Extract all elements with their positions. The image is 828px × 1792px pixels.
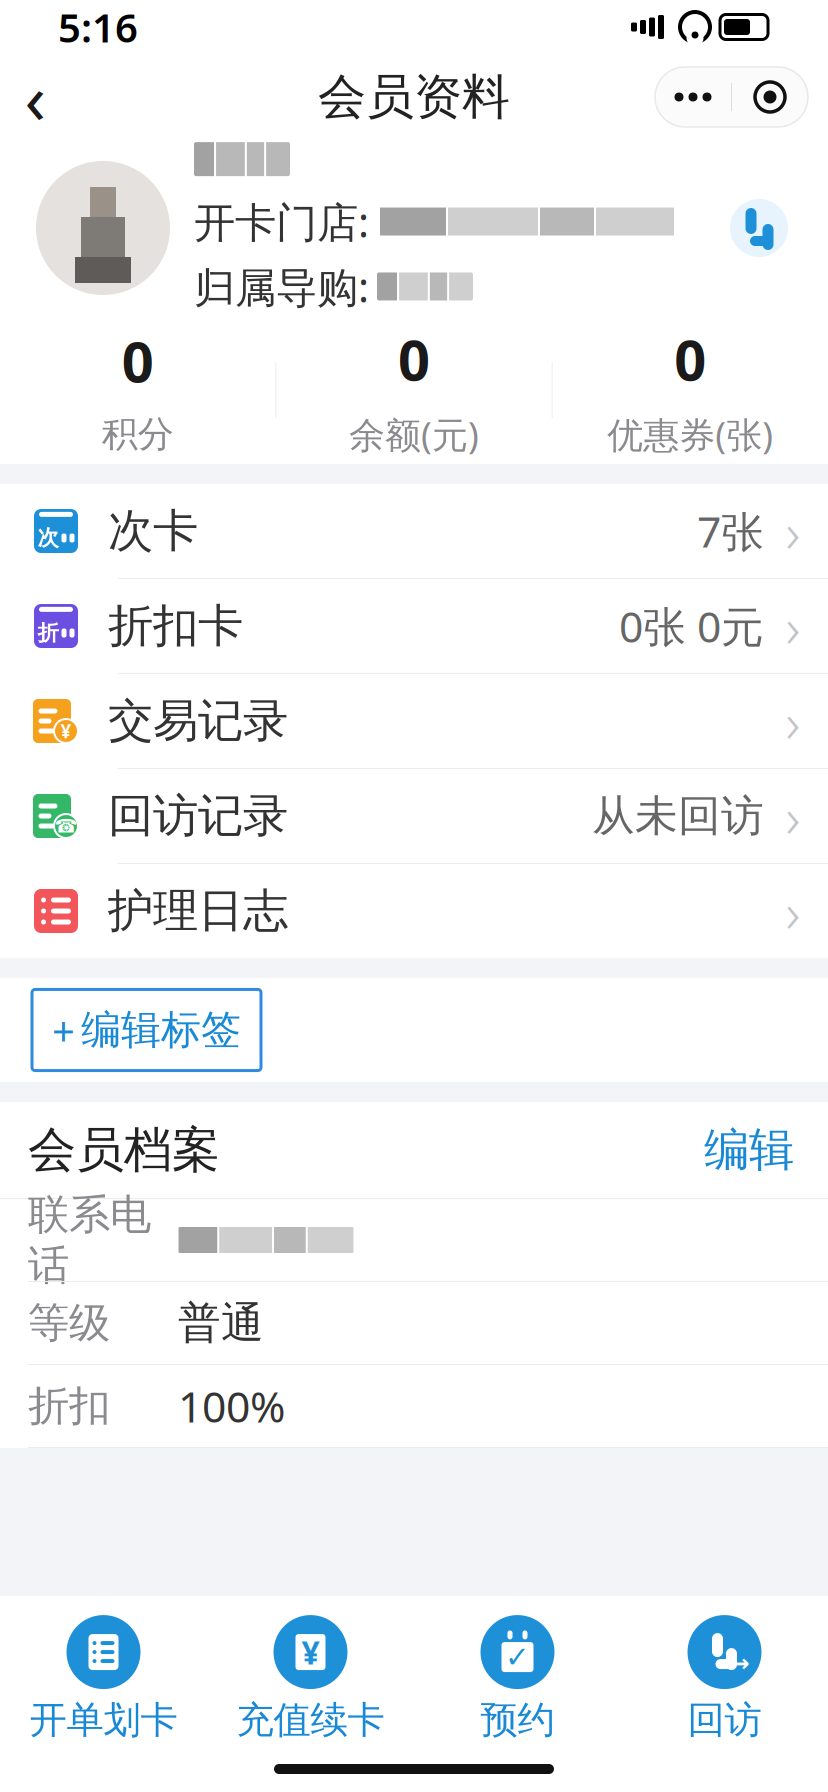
button[interactable]: 开单划卡 bbox=[0, 1615, 207, 1743]
button[interactable]: 折 bbox=[0, 579, 828, 673]
button[interactable]: 返回 bbox=[0, 59, 70, 135]
button[interactable]: 护理日志 bbox=[0, 864, 828, 958]
button[interactable]: 0 bbox=[553, 296, 828, 484]
staticText: 等级 bbox=[28, 1298, 110, 1348]
button[interactable]: ¥ bbox=[207, 1615, 414, 1743]
button[interactable]: ¥ bbox=[0, 674, 828, 768]
staticText: 开卡门店: bbox=[194, 194, 369, 249]
button[interactable]: 0 bbox=[276, 296, 552, 484]
staticText: 充值续卡 bbox=[236, 1697, 384, 1743]
button[interactable]: 0 bbox=[0, 298, 275, 482]
staticText: ‹ bbox=[24, 51, 45, 143]
staticText: → bbox=[729, 1649, 749, 1677]
staticText: 预约 bbox=[480, 1697, 554, 1743]
staticText: 护理日志 bbox=[108, 883, 288, 939]
button[interactable]: 拨打电话 bbox=[730, 199, 788, 257]
staticText: 优惠券(张) bbox=[607, 410, 773, 458]
staticText: 折扣卡 bbox=[108, 598, 243, 654]
staticText: 普通 bbox=[178, 1297, 264, 1349]
staticText: 0 bbox=[398, 322, 430, 396]
button[interactable]: ✓ bbox=[414, 1615, 621, 1743]
button[interactable]: 更多 bbox=[655, 68, 731, 126]
button[interactable]: 编辑 bbox=[682, 1110, 816, 1190]
staticText: 开单划卡 bbox=[29, 1697, 177, 1743]
staticText: › bbox=[785, 589, 800, 663]
staticText: + bbox=[52, 1003, 75, 1056]
staticText: › bbox=[785, 684, 800, 758]
staticText: 0张 0元 bbox=[619, 598, 764, 654]
staticText: 0 bbox=[674, 322, 706, 396]
staticText: 100% bbox=[178, 1378, 285, 1434]
button[interactable]: 胶囊按钮 bbox=[732, 68, 808, 126]
staticText: 编辑 bbox=[704, 1122, 794, 1178]
staticText: ¥ bbox=[60, 719, 71, 743]
staticText: 会员档案 bbox=[28, 1120, 220, 1179]
staticText: 次 bbox=[37, 525, 58, 551]
staticText: 折扣 bbox=[28, 1381, 110, 1431]
staticText: 回访 bbox=[687, 1697, 761, 1743]
staticText: 联系电话 bbox=[28, 1189, 151, 1291]
staticText: 次卡 bbox=[108, 503, 198, 559]
staticText: › bbox=[785, 494, 800, 568]
staticText: ✓ bbox=[505, 1640, 530, 1674]
button[interactable]: + bbox=[32, 989, 261, 1070]
staticText: › bbox=[785, 779, 800, 853]
staticText: 交易记录 bbox=[108, 693, 288, 749]
staticText: 会员资料 bbox=[318, 67, 510, 126]
staticText: 7张 bbox=[697, 503, 764, 559]
staticText: ☎ bbox=[54, 815, 77, 837]
staticText: 归属导购: bbox=[194, 259, 369, 314]
staticText: 编辑标签 bbox=[81, 1005, 241, 1054]
button[interactable]: → bbox=[621, 1615, 828, 1743]
button[interactable]: 次 bbox=[0, 484, 828, 578]
staticText: 积分 bbox=[102, 412, 174, 456]
staticText: ¥ bbox=[301, 1631, 319, 1673]
staticText: 折 bbox=[37, 620, 58, 646]
button[interactable]: ☎ bbox=[0, 769, 828, 863]
staticText: 回访记录 bbox=[108, 788, 288, 844]
staticText: 余额(元) bbox=[349, 410, 479, 458]
staticText: 5:16 bbox=[58, 0, 138, 53]
staticText: 从未回访 bbox=[592, 790, 764, 842]
staticText: 0 bbox=[122, 324, 154, 398]
staticText: › bbox=[785, 874, 800, 948]
